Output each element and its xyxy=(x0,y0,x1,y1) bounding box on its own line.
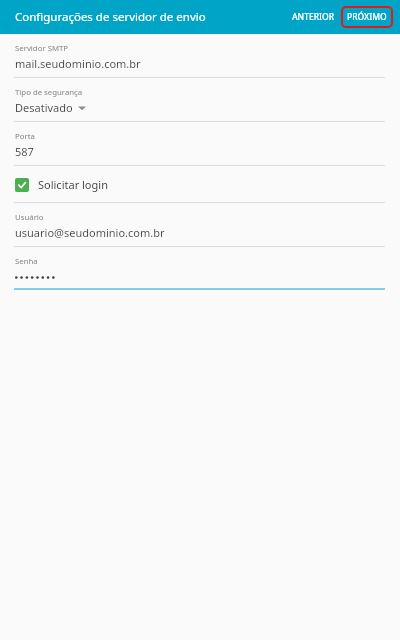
staticText: Desativado xyxy=(15,100,73,115)
staticText: 587 xyxy=(15,144,34,159)
staticText: Senha xyxy=(15,256,38,267)
button[interactable]: Senha xyxy=(0,256,400,282)
staticText: Tipo de segurança xyxy=(15,87,83,98)
staticText: ANTERIOR xyxy=(292,11,335,23)
staticText: Solicitar login xyxy=(38,177,108,192)
button[interactable]: ANTERIOR xyxy=(288,7,339,27)
staticText: Porta xyxy=(15,131,35,142)
button[interactable]: PRÓXIMO xyxy=(341,6,393,28)
button[interactable]: Solicitar login xyxy=(0,177,400,192)
button[interactable]: Usuário xyxy=(0,212,400,240)
staticText: Configurações de servidor de envio xyxy=(15,9,206,25)
staticText: mail.seudominio.com.br xyxy=(15,56,141,71)
staticText: PRÓXIMO xyxy=(347,11,387,23)
button[interactable]: Porta xyxy=(0,131,400,159)
staticText: Servidor SMTP xyxy=(15,43,69,54)
button[interactable]: Servidor SMTP xyxy=(0,43,400,71)
staticText: Usuário xyxy=(15,212,44,223)
staticText: usuario@seudominio.com.br xyxy=(15,225,165,240)
button[interactable]: Tipo de segurança xyxy=(0,87,400,115)
